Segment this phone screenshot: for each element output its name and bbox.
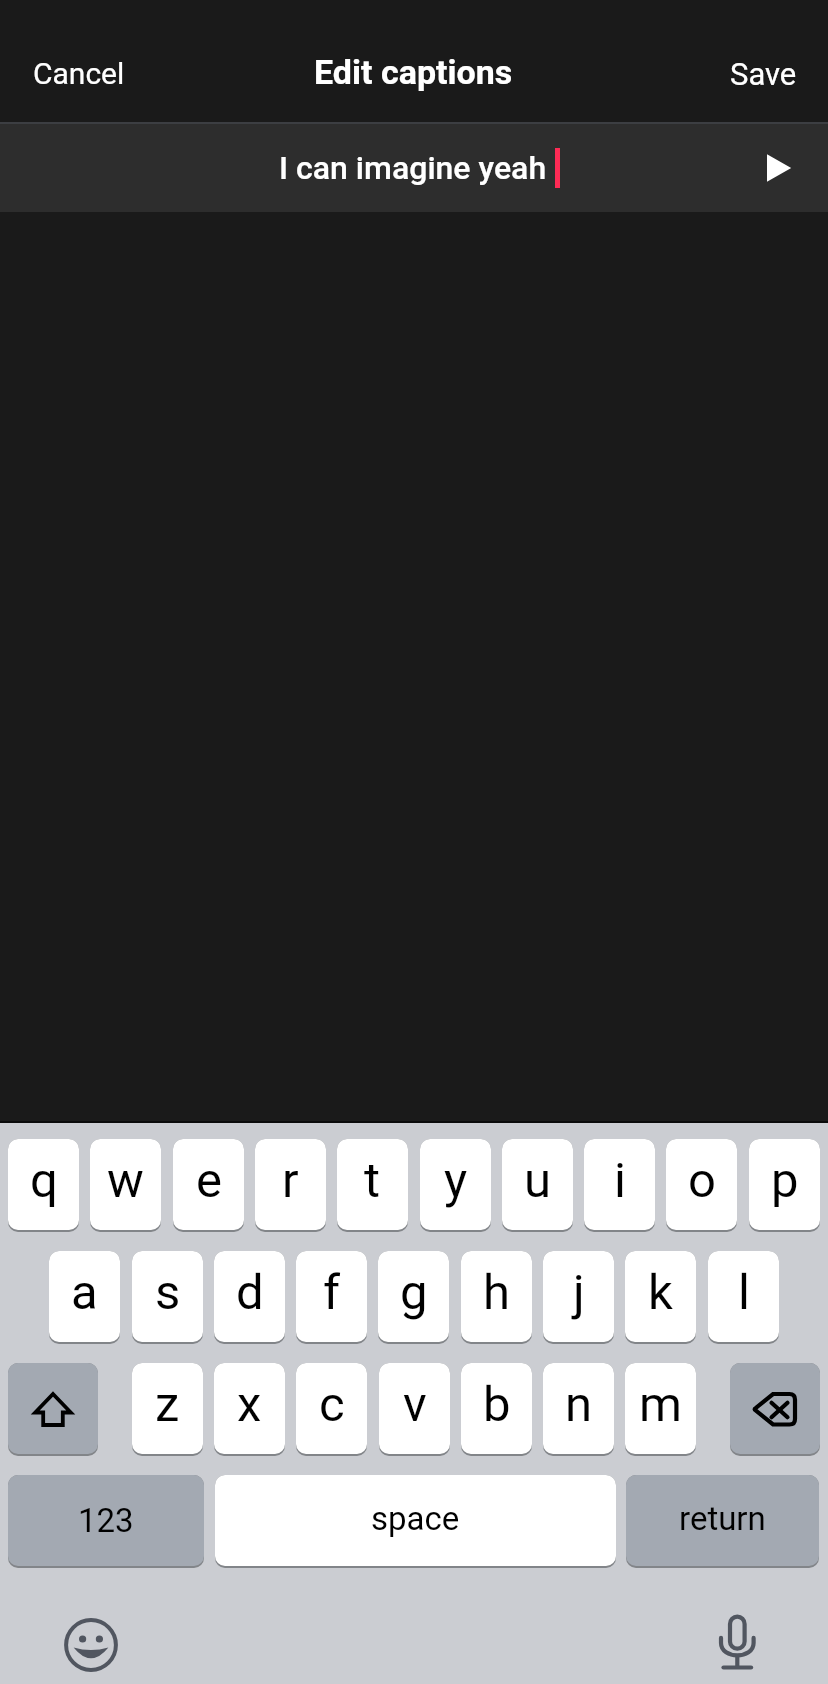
button[interactable]: x: [214, 1363, 285, 1454]
button[interactable]: h: [461, 1251, 532, 1342]
button[interactable]: Voice input: [701, 1609, 773, 1681]
staticText: g: [400, 1264, 428, 1321]
staticText: x: [237, 1376, 262, 1433]
staticText: o: [688, 1152, 716, 1209]
staticText: I can imagine yeah: [279, 149, 547, 187]
staticText: 123: [78, 1501, 134, 1540]
button[interactable]: o: [666, 1139, 737, 1230]
button[interactable]: d: [214, 1251, 285, 1342]
button[interactable]: space: [215, 1475, 616, 1566]
staticText: k: [648, 1264, 673, 1321]
button[interactable]: r: [255, 1139, 326, 1230]
button[interactable]: f: [296, 1251, 367, 1342]
staticText: h: [483, 1264, 510, 1321]
staticText: Edit captions: [314, 52, 513, 92]
staticText: return: [679, 1499, 766, 1538]
button[interactable]: Backspace: [730, 1363, 820, 1454]
button[interactable]: s: [132, 1251, 203, 1342]
staticText: q: [30, 1152, 58, 1209]
staticText: r: [282, 1152, 299, 1209]
button[interactable]: w: [90, 1139, 161, 1230]
staticText: w: [107, 1152, 144, 1209]
staticText: s: [155, 1264, 181, 1321]
staticText: Cancel: [33, 56, 125, 91]
staticText: e: [196, 1152, 222, 1209]
button[interactable]: a: [49, 1251, 120, 1342]
button[interactable]: u: [502, 1139, 573, 1230]
staticText: Save: [730, 56, 797, 92]
button[interactable]: return: [626, 1475, 819, 1566]
staticText: j: [573, 1264, 585, 1321]
button[interactable]: m: [625, 1363, 696, 1454]
staticText: b: [483, 1376, 511, 1433]
button[interactable]: Emoji: [55, 1609, 127, 1681]
button[interactable]: t: [337, 1139, 408, 1230]
button[interactable]: c: [296, 1363, 367, 1454]
button[interactable]: Shift: [8, 1363, 98, 1454]
staticText: space: [371, 1499, 460, 1538]
staticText: d: [236, 1264, 264, 1321]
button[interactable]: q: [8, 1139, 79, 1230]
staticText: u: [524, 1152, 552, 1209]
staticText: t: [364, 1152, 381, 1209]
button[interactable]: y: [420, 1139, 491, 1230]
staticText: a: [71, 1264, 98, 1321]
other: Backspace: [730, 1363, 820, 1454]
button[interactable]: e: [173, 1139, 244, 1230]
button[interactable]: Save: [699, 42, 828, 106]
staticText: y: [444, 1152, 468, 1209]
other: Shift: [8, 1363, 98, 1454]
button[interactable]: Play: [744, 134, 812, 202]
staticText: p: [771, 1152, 799, 1209]
button[interactable]: z: [132, 1363, 203, 1454]
staticText: c: [319, 1376, 345, 1433]
button[interactable]: b: [461, 1363, 532, 1454]
button[interactable]: g: [378, 1251, 449, 1342]
staticText: f: [323, 1264, 341, 1321]
staticText: m: [639, 1376, 682, 1433]
button[interactable]: 123: [8, 1475, 204, 1566]
button[interactable]: v: [379, 1363, 450, 1454]
staticText: v: [403, 1376, 427, 1433]
staticText: z: [155, 1376, 180, 1433]
button[interactable]: Cancel: [0, 42, 158, 105]
staticText: n: [565, 1376, 593, 1433]
button[interactable]: p: [749, 1139, 820, 1230]
staticText: i: [614, 1152, 626, 1209]
button[interactable]: n: [543, 1363, 614, 1454]
button[interactable]: i: [584, 1139, 655, 1230]
button[interactable]: j: [543, 1251, 614, 1342]
button[interactable]: l: [708, 1251, 779, 1342]
button[interactable]: k: [625, 1251, 696, 1342]
staticText: l: [738, 1264, 750, 1321]
